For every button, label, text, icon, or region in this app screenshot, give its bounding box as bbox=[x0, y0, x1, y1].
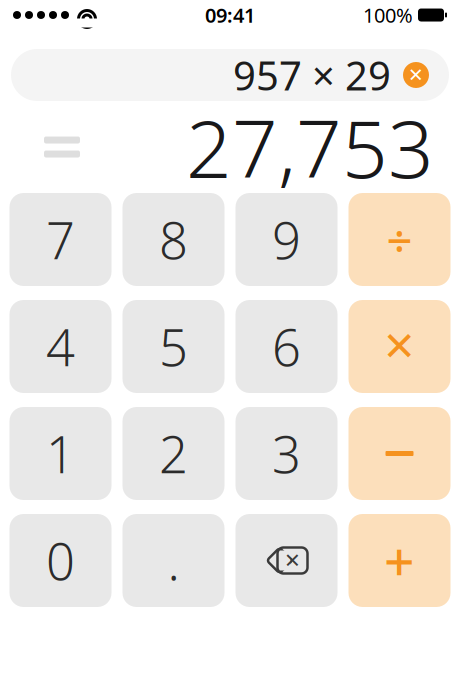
button[interactable]: 5 bbox=[122, 300, 224, 393]
button[interactable]: Divide bbox=[348, 193, 450, 286]
button[interactable]: 3 bbox=[235, 407, 337, 500]
button[interactable]: Subtract bbox=[348, 407, 450, 500]
staticText: ✕ bbox=[284, 549, 301, 572]
button[interactable]: Delete bbox=[235, 514, 337, 607]
staticText: + bbox=[384, 525, 415, 596]
staticText: . bbox=[167, 527, 179, 594]
staticText: 2 bbox=[159, 420, 188, 487]
button[interactable]: . bbox=[122, 514, 224, 607]
staticText: 9 bbox=[272, 206, 301, 273]
staticText: 3 bbox=[272, 420, 301, 487]
button[interactable]: 9 bbox=[235, 193, 337, 286]
staticText: 27,753 bbox=[186, 94, 434, 200]
staticText: 0 bbox=[46, 527, 75, 594]
button[interactable]: 8 bbox=[122, 193, 224, 286]
staticText: 1 bbox=[46, 420, 75, 487]
staticText: 09:41 bbox=[205, 2, 255, 28]
staticText: 5 bbox=[159, 313, 188, 380]
button[interactable]: 6 bbox=[235, 300, 337, 393]
staticText: 100% bbox=[363, 2, 413, 28]
button[interactable]: 2 bbox=[122, 407, 224, 500]
button[interactable]: 0 bbox=[9, 514, 111, 607]
button[interactable]: 957 × 29 bbox=[11, 49, 449, 101]
staticText: ✕ bbox=[408, 64, 424, 86]
button[interactable]: Add bbox=[348, 514, 450, 607]
button[interactable]: 4 bbox=[9, 300, 111, 393]
staticText: 7 bbox=[46, 206, 75, 273]
staticText: 957 × 29 bbox=[233, 48, 391, 101]
staticText: 8 bbox=[159, 206, 188, 273]
staticText: 6 bbox=[272, 313, 301, 380]
staticText: ÷ bbox=[386, 209, 412, 270]
staticText: ✕ bbox=[382, 324, 416, 369]
button[interactable]: 1 bbox=[9, 407, 111, 500]
staticText: 4 bbox=[46, 313, 75, 380]
button[interactable]: Multiply bbox=[348, 300, 450, 393]
button[interactable]: 7 bbox=[9, 193, 111, 286]
